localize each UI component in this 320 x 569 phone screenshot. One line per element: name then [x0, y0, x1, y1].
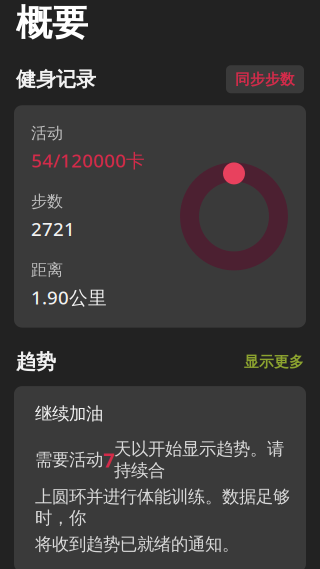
- staticText: 显示更多: [244, 353, 304, 371]
- staticText: 同步步数: [235, 70, 295, 88]
- button[interactable]: 同步步数: [226, 65, 304, 93]
- staticText: 1.90公里: [31, 285, 107, 310]
- staticText: 步数: [31, 192, 63, 211]
- staticText: 活动: [31, 123, 63, 143]
- button[interactable]: 继续加油: [14, 386, 306, 569]
- staticText: 天以开始显示趋势。请持续合: [114, 438, 284, 481]
- staticText: 将收到趋势已就绪的通知。: [35, 534, 239, 555]
- staticText: 7: [103, 446, 114, 473]
- staticText: 健身记录: [16, 67, 96, 92]
- staticText: 需要活动: [35, 449, 103, 470]
- staticText: 继续加油: [35, 403, 103, 424]
- staticText: 距离: [31, 260, 63, 280]
- staticText: 概要: [16, 1, 88, 45]
- staticText: 2721: [31, 216, 75, 241]
- staticText: 上圆环并进行体能训练。数据足够时，你: [35, 486, 290, 529]
- staticText: 趋势: [16, 350, 56, 374]
- staticText: 54/120000卡: [31, 148, 145, 173]
- button[interactable]: 显示更多: [244, 353, 304, 371]
- button[interactable]: 活动: [14, 105, 306, 328]
